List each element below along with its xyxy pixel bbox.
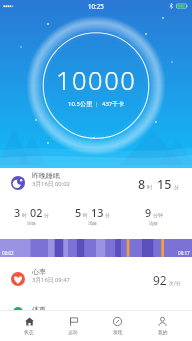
staticText: 体重	[32, 305, 46, 314]
staticText: 9	[145, 205, 152, 220]
staticText: 437千卡	[102, 100, 125, 108]
staticText: 分	[174, 184, 180, 191]
staticText: 13	[91, 205, 104, 220]
button[interactable]: 心率	[0, 262, 192, 296]
staticText: 时	[22, 212, 27, 218]
button[interactable]: 运动	[51, 311, 95, 341]
staticText: 10:25	[88, 2, 104, 10]
button[interactable]: 体重	[0, 300, 192, 310]
staticText: 昨晚睡眠	[32, 171, 60, 180]
staticText: 15	[157, 176, 172, 193]
staticText: 深睡	[27, 221, 36, 227]
staticText: 分	[105, 212, 110, 218]
staticText: 状态	[24, 329, 34, 335]
button[interactable]: 状态	[7, 311, 51, 341]
staticText: 92	[153, 272, 167, 288]
staticText: 分钟	[153, 212, 163, 218]
staticText: 00:02	[2, 250, 14, 256]
staticText: 我的	[158, 329, 168, 335]
staticText: 运动	[68, 329, 78, 335]
staticText: 次/分	[169, 280, 181, 287]
staticText: 心率	[32, 267, 46, 276]
staticText: 3月16日 09:47	[32, 276, 70, 284]
staticText: 08:17	[178, 250, 190, 256]
button[interactable]: 昨晚睡眠	[0, 168, 192, 258]
staticText: 清醒	[149, 221, 158, 227]
staticText: 分	[44, 212, 49, 218]
staticText: 10.5公里	[68, 100, 92, 108]
staticText: 浅睡	[88, 221, 97, 227]
staticText: 时	[83, 212, 88, 218]
button[interactable]: 我的	[140, 311, 185, 341]
staticText: 02	[30, 205, 43, 220]
staticText: |	[92, 100, 102, 108]
staticText: 10000	[56, 63, 137, 98]
staticText: 3	[14, 205, 21, 220]
staticText: 8	[138, 176, 146, 193]
staticText: 3月16日 00:02	[32, 180, 70, 188]
staticText: 时	[147, 184, 153, 191]
staticText: 5	[75, 205, 82, 220]
staticText: 发现	[113, 329, 123, 335]
button[interactable]: 发现	[95, 311, 140, 341]
